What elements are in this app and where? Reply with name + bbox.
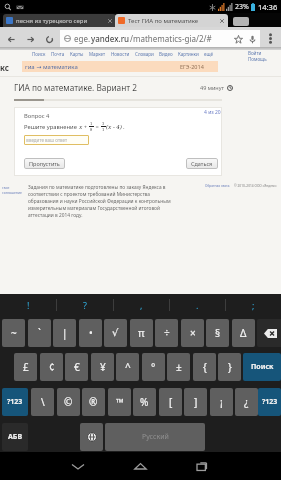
button[interactable]: . bbox=[170, 294, 225, 316]
button[interactable]: ] bbox=[184, 388, 207, 416]
button[interactable]: £ bbox=[14, 353, 37, 381]
staticText: √ bbox=[112, 327, 119, 339]
staticText: ° bbox=[151, 360, 156, 374]
staticText: ] bbox=[194, 395, 198, 409]
staticText: 1 bbox=[102, 127, 105, 132]
button[interactable]: ?123 bbox=[2, 388, 28, 416]
staticText: © bbox=[64, 395, 73, 409]
button[interactable]: Поиск bbox=[243, 353, 281, 381]
staticText: математика bbox=[43, 63, 78, 71]
button[interactable]: Тест ГИА по математике bbox=[115, 14, 228, 27]
staticText: Картинки bbox=[178, 51, 199, 57]
button[interactable]: More options bbox=[260, 27, 281, 50]
staticText: \ bbox=[41, 395, 45, 409]
button[interactable]: Back bbox=[4, 32, 18, 46]
button[interactable]: ege. bbox=[60, 30, 260, 47]
button[interactable]: } bbox=[218, 353, 241, 381]
staticText: АБВ bbox=[8, 432, 23, 442]
staticText: x + bbox=[79, 123, 89, 131]
staticText: yandex.ru bbox=[91, 33, 130, 44]
button[interactable]: Пропустить bbox=[24, 158, 65, 169]
button[interactable]: ÷ bbox=[155, 319, 178, 347]
button[interactable]: введите ваш ответ bbox=[24, 135, 89, 145]
staticText: 49 минут bbox=[200, 84, 225, 91]
button[interactable]: © bbox=[57, 388, 80, 416]
staticText: ` bbox=[38, 326, 41, 340]
button[interactable]: ! bbox=[0, 294, 56, 316]
button[interactable]: ¿ bbox=[235, 388, 258, 416]
staticText: 14:36 bbox=[258, 2, 278, 12]
staticText: ещё bbox=[204, 51, 213, 57]
staticText: ~ bbox=[11, 326, 17, 340]
staticText: £ bbox=[23, 360, 29, 374]
button[interactable]: ¥ bbox=[91, 353, 114, 381]
staticText: 3 bbox=[102, 121, 105, 126]
staticText: ™ bbox=[116, 395, 124, 409]
staticText: ?123 bbox=[262, 397, 278, 407]
button[interactable]: Reload bbox=[42, 32, 56, 46]
staticText: ГИА по математике. Вариант 2 bbox=[14, 82, 138, 93]
button[interactable]: АБВ bbox=[2, 423, 28, 451]
button[interactable]: [ bbox=[159, 388, 182, 416]
staticText: ское соглашение bbox=[2, 185, 25, 195]
button[interactable]: • bbox=[79, 319, 102, 347]
button[interactable]: Recent apps bbox=[188, 452, 216, 480]
staticText: } bbox=[228, 360, 232, 374]
button[interactable]: ~ bbox=[2, 319, 25, 347]
staticText: [ bbox=[169, 395, 173, 409]
button[interactable]: Русский bbox=[105, 423, 205, 451]
button[interactable]: { bbox=[193, 353, 216, 381]
button[interactable]: √ bbox=[104, 319, 127, 347]
button[interactable] bbox=[257, 319, 281, 347]
staticText: ¡ bbox=[220, 395, 223, 409]
staticText: € bbox=[74, 360, 80, 374]
button[interactable]: π bbox=[130, 319, 153, 347]
button[interactable]: ¢ bbox=[40, 353, 63, 381]
staticText: (x − 4) . bbox=[106, 123, 125, 131]
staticText: Поиск bbox=[251, 362, 274, 372]
button[interactable]: ^ bbox=[116, 353, 139, 381]
button[interactable]: New tab bbox=[233, 17, 249, 26]
button[interactable]: Forward bbox=[23, 32, 37, 46]
button[interactable]: § bbox=[206, 319, 229, 347]
button[interactable]: Hide keyboard bbox=[64, 452, 92, 480]
staticText: ege. bbox=[74, 33, 91, 44]
button[interactable]: ? bbox=[57, 294, 113, 316]
staticText: Поиск bbox=[32, 51, 46, 57]
staticText: Видео bbox=[159, 51, 173, 57]
staticText: { bbox=[203, 360, 207, 374]
staticText: Пропустить bbox=[29, 160, 60, 167]
button[interactable]: ± bbox=[167, 353, 190, 381]
button[interactable]: % bbox=[133, 388, 156, 416]
staticText: ® bbox=[89, 395, 98, 409]
button[interactable]: Voice search bbox=[245, 32, 259, 46]
button[interactable]: ® bbox=[82, 388, 105, 416]
staticText: ?123 bbox=[7, 397, 23, 407]
staticText: ЕГЭ-2014 bbox=[180, 63, 204, 70]
staticText: • bbox=[89, 326, 93, 340]
button[interactable]: Bookmark bbox=[231, 32, 245, 46]
button[interactable]: Сдаться bbox=[186, 158, 218, 169]
button[interactable]: ™ bbox=[108, 388, 131, 416]
button[interactable]: гиа → bbox=[22, 61, 218, 72]
staticText: ! bbox=[27, 299, 30, 311]
button[interactable]: | bbox=[53, 319, 76, 347]
button[interactable]: ¡ bbox=[210, 388, 233, 416]
button[interactable]: \ bbox=[31, 388, 54, 416]
button[interactable]: ?123 bbox=[258, 388, 281, 416]
staticText: песня из турецкого сери bbox=[16, 17, 105, 25]
button[interactable]: ` bbox=[28, 319, 51, 347]
button[interactable]: ° bbox=[142, 353, 165, 381]
staticText: ^ bbox=[125, 360, 131, 374]
button[interactable]: Δ bbox=[232, 319, 255, 347]
button[interactable]: Change keyboard bbox=[80, 423, 103, 451]
button[interactable]: € bbox=[65, 353, 88, 381]
staticText: , bbox=[140, 299, 143, 311]
staticText: © 2010–2014 ООО «Яндекс» bbox=[234, 184, 277, 188]
button[interactable]: Home bbox=[126, 452, 154, 480]
button[interactable]: ; bbox=[226, 294, 281, 316]
button[interactable]: × bbox=[181, 319, 204, 347]
button[interactable]: песня из турецкого сери bbox=[3, 14, 116, 27]
button[interactable]: , bbox=[114, 294, 169, 316]
staticText: Новости bbox=[111, 51, 130, 57]
